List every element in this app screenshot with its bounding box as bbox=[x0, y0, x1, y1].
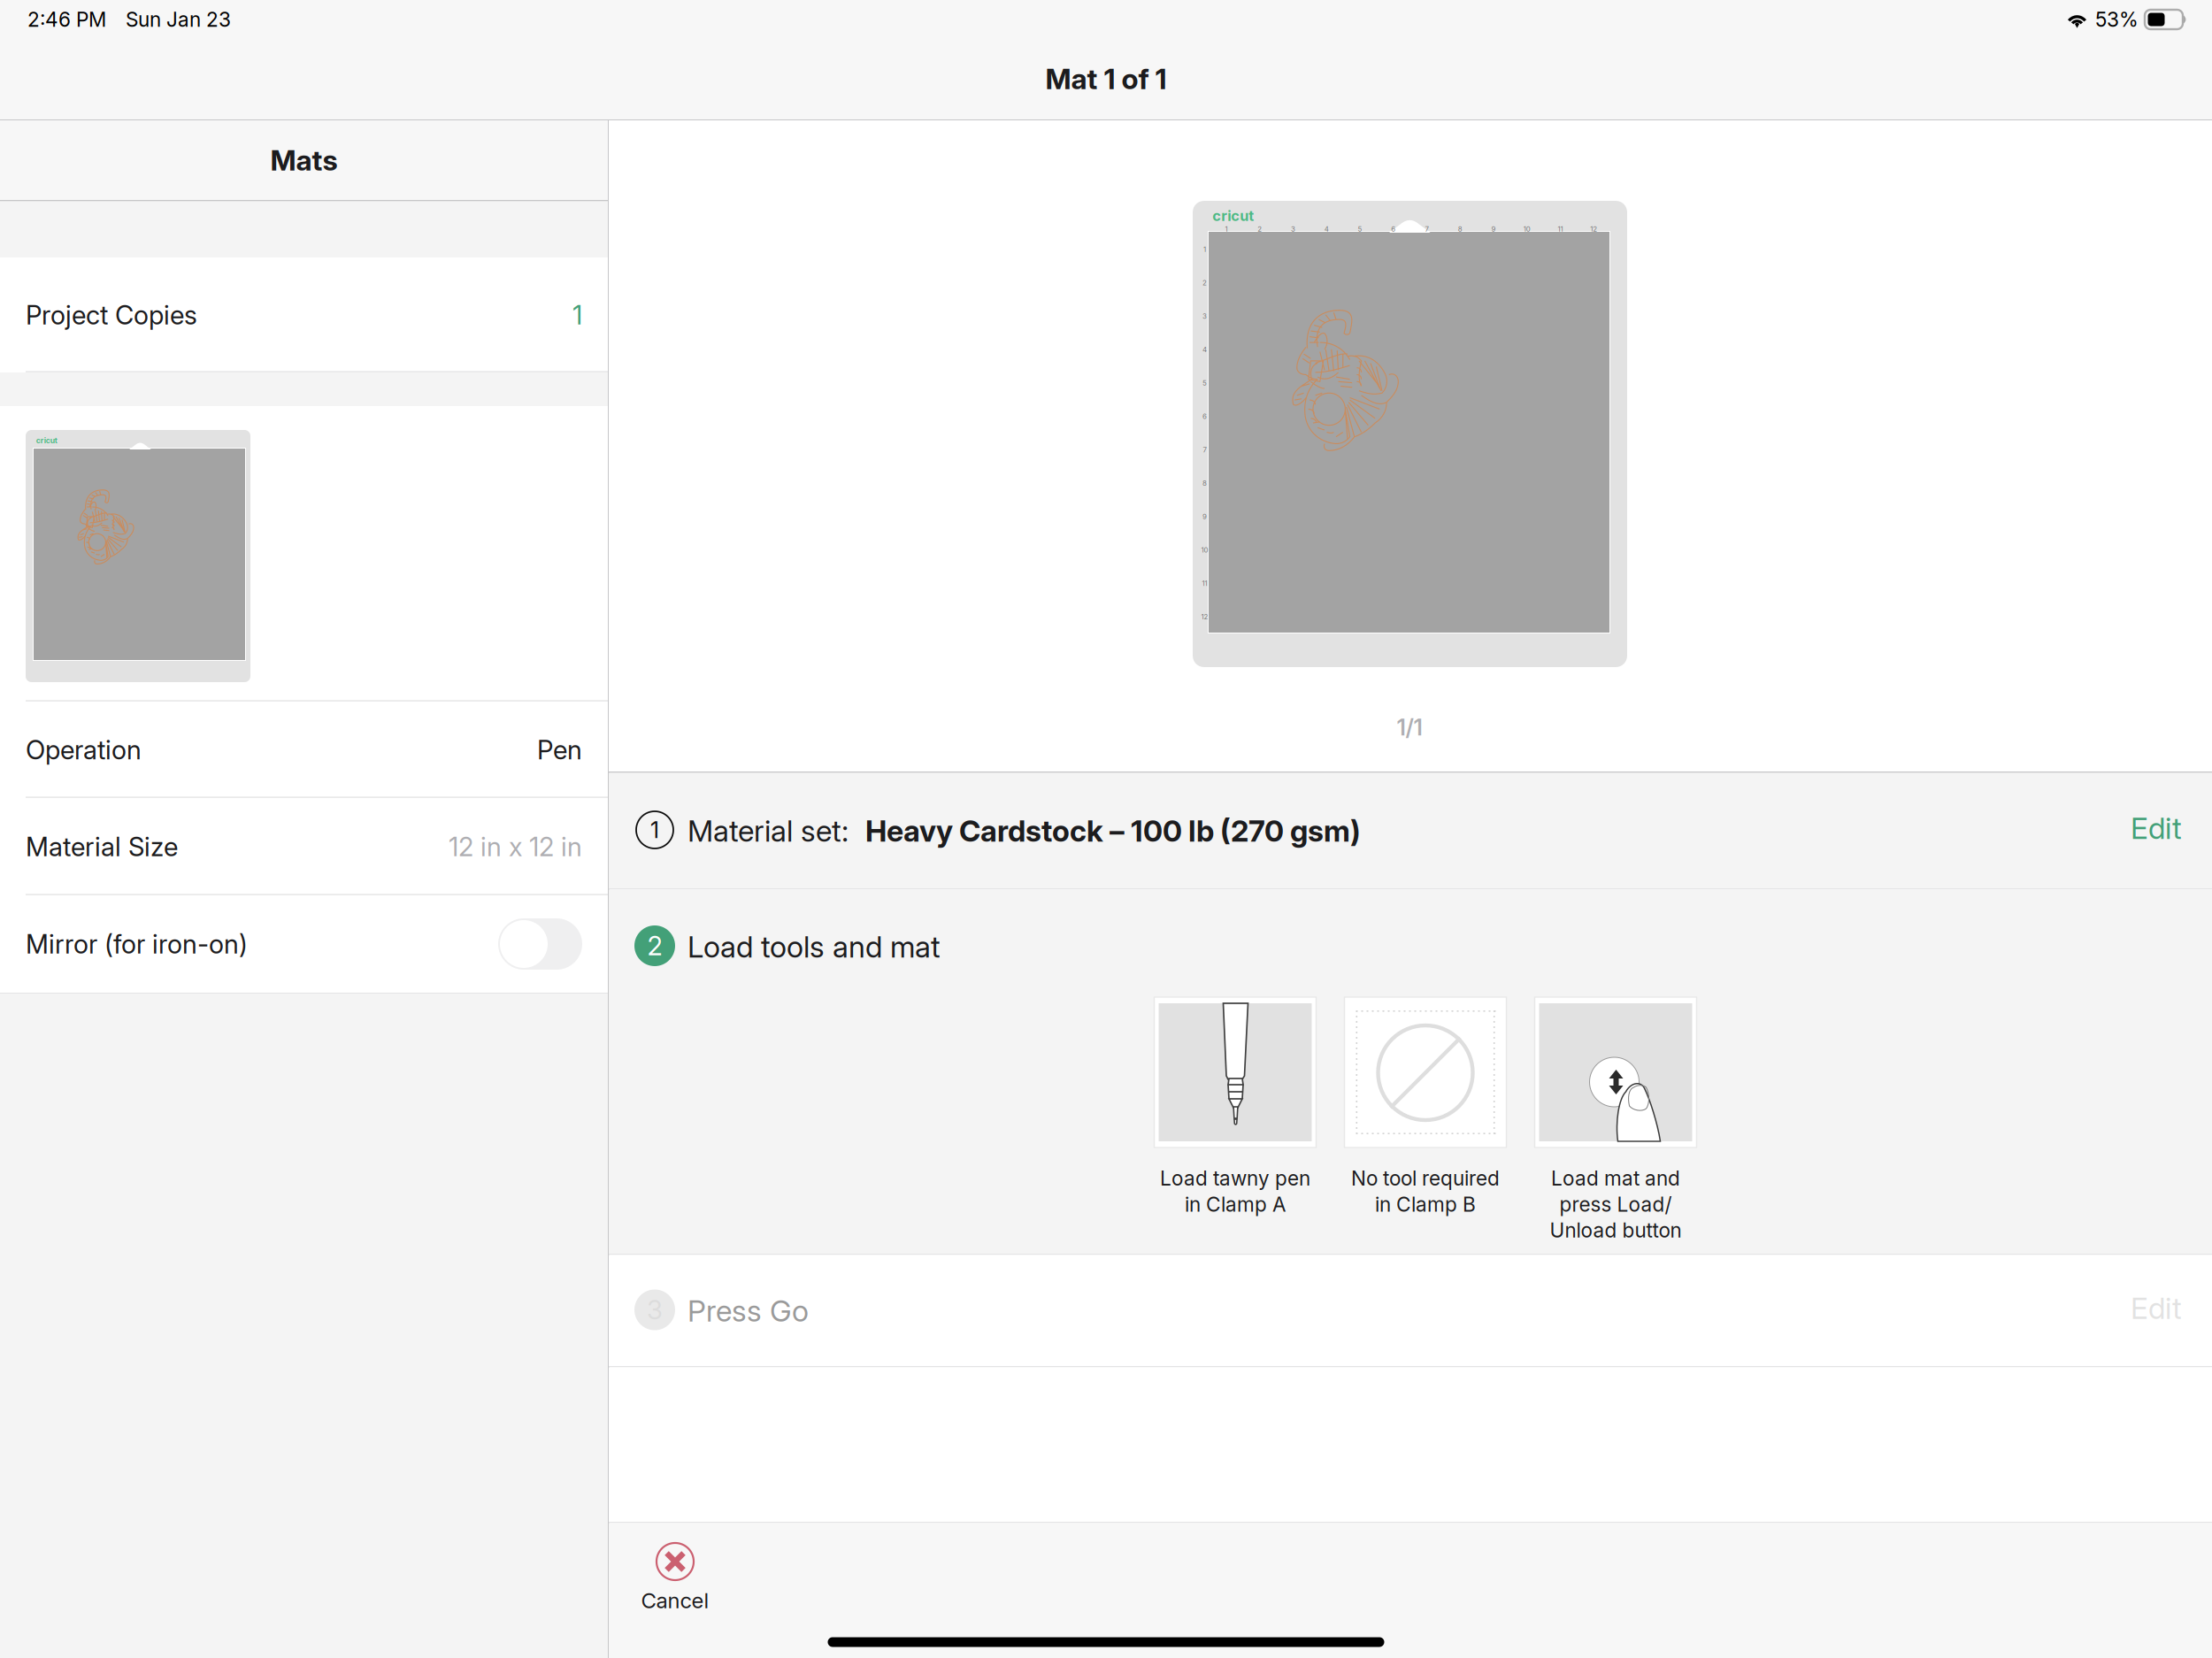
staticText: Pen bbox=[537, 734, 582, 766]
staticText: 2:46 PM bbox=[27, 7, 106, 32]
staticText: 3 bbox=[1291, 225, 1295, 233]
staticText: 11 bbox=[1202, 579, 1207, 588]
staticText: in Clamp A bbox=[1185, 1192, 1286, 1216]
staticText: Project Copies bbox=[26, 299, 197, 331]
staticText: 4 bbox=[1324, 225, 1329, 233]
staticText: 1 bbox=[650, 816, 659, 844]
staticText: Material set: bbox=[687, 813, 849, 849]
staticText: 7 bbox=[1425, 225, 1428, 233]
staticText: Cancel bbox=[641, 1588, 709, 1613]
staticText: 2 bbox=[1202, 279, 1207, 287]
staticText: 8 bbox=[1458, 225, 1462, 233]
staticText: 53% bbox=[2095, 7, 2139, 32]
staticText: Operation bbox=[26, 734, 142, 766]
staticText: 3 bbox=[647, 1294, 663, 1326]
staticText: 4 bbox=[1202, 345, 1207, 354]
staticText: 9 bbox=[1202, 512, 1207, 521]
button[interactable]: Edit bbox=[2115, 800, 2198, 857]
button[interactable]: Material Size bbox=[0, 798, 608, 895]
staticText: 1 bbox=[1203, 245, 1206, 254]
staticText: 12 in x 12 in bbox=[449, 831, 582, 862]
button[interactable]: Mirror (for iron-on) bbox=[0, 895, 608, 993]
button[interactable]: Edit bbox=[2115, 1280, 2198, 1336]
staticText: Load tawny pen bbox=[1160, 1166, 1310, 1190]
staticText: Unload button bbox=[1550, 1218, 1682, 1242]
staticText: cricut bbox=[36, 436, 57, 445]
staticText: 7 bbox=[1203, 446, 1206, 454]
button[interactable]: Cancel bbox=[629, 1533, 722, 1622]
staticText: 10 bbox=[1523, 225, 1530, 233]
staticText: 5 bbox=[1358, 225, 1362, 233]
staticText: 6 bbox=[1202, 412, 1207, 421]
staticText: Mat 1 of 1 bbox=[1045, 62, 1167, 96]
staticText: Edit bbox=[2131, 810, 2182, 846]
staticText: 1/1 bbox=[1397, 714, 1422, 741]
staticText: press Load/ bbox=[1559, 1192, 1672, 1216]
staticText: 12 bbox=[1201, 613, 1208, 621]
staticText: 6 bbox=[1391, 225, 1395, 233]
staticText: 1 bbox=[572, 299, 582, 331]
staticText: 8 bbox=[1202, 479, 1207, 487]
staticText: Load mat and bbox=[1551, 1166, 1680, 1190]
button[interactable]: cricut bbox=[0, 406, 608, 702]
staticText: Mats bbox=[270, 143, 338, 177]
staticText: No tool required bbox=[1351, 1166, 1500, 1190]
staticText: Edit bbox=[2131, 1290, 2182, 1326]
staticText: in Clamp B bbox=[1375, 1192, 1476, 1216]
staticText: 2 bbox=[647, 930, 662, 962]
staticText: Material Size bbox=[26, 831, 178, 862]
staticText: Sun Jan 23 bbox=[126, 7, 231, 32]
staticText: 11 bbox=[1558, 225, 1563, 233]
staticText: 10 bbox=[1201, 546, 1208, 554]
staticText: 12 bbox=[1590, 225, 1597, 233]
staticText: Press Go bbox=[687, 1293, 809, 1329]
staticText: Load tools and mat bbox=[687, 929, 941, 964]
staticText: 5 bbox=[1202, 379, 1207, 387]
staticText: 9 bbox=[1491, 225, 1496, 233]
button[interactable]: Operation bbox=[0, 702, 608, 798]
staticText: cricut bbox=[1212, 207, 1254, 224]
staticText: 2 bbox=[1257, 225, 1262, 233]
staticText: Heavy Cardstock – 100 lb (270 gsm) bbox=[865, 813, 1361, 849]
staticText: Mirror (for iron-on) bbox=[26, 928, 248, 960]
staticText: 3 bbox=[1202, 312, 1207, 320]
button[interactable]: Project Copies bbox=[0, 257, 608, 372]
staticText: 1 bbox=[1225, 225, 1228, 233]
